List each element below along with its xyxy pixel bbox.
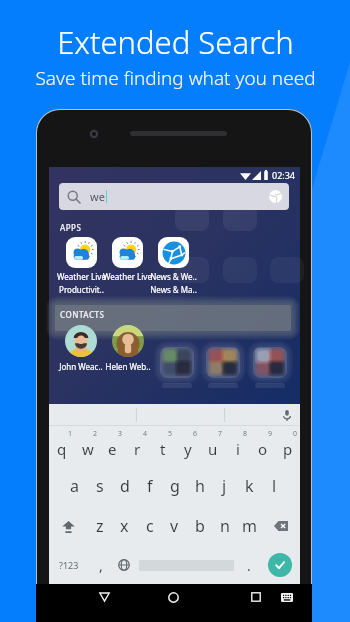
button[interactable]: z (87, 506, 112, 546)
button[interactable]: Weather Live (95, 237, 159, 299)
staticText: News & Ma.. (150, 284, 197, 295)
staticText: Save time finding what you need (35, 65, 316, 91)
button[interactable] (135, 546, 237, 584)
other: Voice input (283, 410, 291, 421)
button[interactable]: News & We.. (141, 237, 205, 299)
button[interactable]: j (212, 466, 237, 506)
staticText: we (90, 189, 105, 204)
staticText: 6 (193, 429, 198, 439)
button[interactable]: v (162, 506, 187, 546)
button[interactable]: 1 (49, 426, 75, 466)
button[interactable]: b (187, 506, 212, 546)
button[interactable]: . (237, 546, 260, 584)
button[interactable]: ?123 (49, 546, 89, 584)
staticText: Weather Live (57, 271, 106, 282)
button[interactable]: Home (164, 588, 182, 606)
staticText: 9 (268, 429, 273, 439)
staticText: p (283, 439, 293, 459)
staticText: g (170, 475, 180, 497)
staticText: s (96, 475, 104, 497)
staticText: 3 (118, 429, 123, 439)
button[interactable]: Back (95, 588, 113, 606)
staticText: John Weac.. (59, 361, 103, 372)
staticText: 1 (68, 429, 73, 439)
staticText: m (242, 515, 257, 537)
staticText: Helen Web.. (105, 361, 151, 372)
button[interactable]: d (112, 466, 137, 506)
staticText: Weather Live (103, 271, 152, 282)
button[interactable]: we (59, 183, 289, 210)
button[interactable]: k (237, 466, 262, 506)
staticText: k (245, 475, 254, 497)
button[interactable]: Change language (112, 546, 135, 584)
staticText: a (70, 475, 79, 497)
button[interactable]: 6 (175, 426, 200, 466)
button[interactable]: John Weac.. (49, 325, 113, 373)
button[interactable]: 3 (100, 426, 125, 466)
button[interactable]: 4 (125, 426, 150, 466)
button[interactable]: 7 (200, 426, 225, 466)
staticText: 02:34 (272, 169, 296, 181)
staticText: f (147, 475, 153, 497)
button[interactable]: Search (268, 553, 292, 577)
button[interactable]: Weather Live (49, 237, 113, 299)
staticText: APPS (60, 222, 82, 233)
button[interactable]: 2 (75, 426, 100, 466)
button[interactable]: 9 (250, 426, 275, 466)
staticText: h (195, 475, 205, 497)
staticText: i (236, 439, 240, 459)
button[interactable]: , (89, 546, 112, 584)
button[interactable]: 8 (225, 426, 250, 466)
staticText: q (57, 439, 67, 459)
staticText: z (96, 515, 104, 537)
button[interactable]: Switch keyboard (278, 588, 296, 606)
button[interactable]: Shift (49, 506, 87, 546)
button[interactable]: f (137, 466, 162, 506)
button[interactable]: n (212, 506, 237, 546)
staticText: t (160, 439, 166, 459)
staticText: ?123 (59, 559, 79, 571)
staticText: v (170, 515, 179, 537)
staticText: Extended Search (57, 21, 294, 63)
other: Web search (268, 189, 283, 204)
staticText: r (134, 439, 141, 459)
staticText: 2 (93, 429, 98, 439)
staticText: Productivit.. (59, 284, 104, 295)
button[interactable]: s (87, 466, 112, 506)
staticText: 5 (168, 429, 173, 439)
staticText: , (99, 556, 103, 575)
staticText: d (120, 475, 130, 497)
button[interactable]: 5 (150, 426, 175, 466)
staticText: b (195, 515, 205, 537)
staticText: l (272, 475, 277, 497)
button[interactable]: Recent apps (247, 588, 265, 606)
staticText: 0 (293, 429, 298, 439)
staticText: w (82, 439, 94, 459)
staticText: 7 (218, 429, 223, 439)
staticText: x (120, 515, 129, 537)
button[interactable]: Helen Web.. (96, 325, 160, 373)
button[interactable]: h (187, 466, 212, 506)
button[interactable]: m (237, 506, 262, 546)
button[interactable]: Backspace (262, 506, 300, 546)
button[interactable]: 0 (275, 426, 300, 466)
button[interactable]: a (62, 466, 87, 506)
staticText: e (108, 439, 117, 459)
staticText: j (222, 475, 227, 497)
staticText: o (258, 439, 268, 459)
staticText: c (146, 515, 154, 537)
staticText: 8 (243, 429, 248, 439)
button[interactable]: c (137, 506, 162, 546)
staticText: 4 (143, 429, 148, 439)
button[interactable]: l (262, 466, 287, 506)
button[interactable]: x (112, 506, 137, 546)
staticText: News & We.. (150, 271, 197, 282)
staticText: u (208, 439, 218, 459)
staticText: CONTACTS (60, 309, 105, 320)
staticText: y (184, 439, 192, 459)
staticText: . (247, 556, 251, 575)
staticText: n (220, 515, 230, 537)
button[interactable]: g (162, 466, 187, 506)
